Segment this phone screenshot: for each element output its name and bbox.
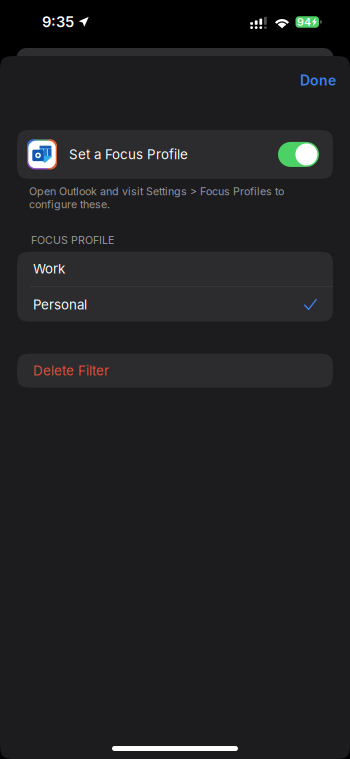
button[interactable]: Done: [291, 65, 345, 96]
staticText: 94: [297, 15, 311, 28]
staticText: Delete Filter: [33, 363, 109, 379]
button[interactable]: Personal: [17, 287, 333, 322]
staticText: Personal: [33, 296, 87, 313]
staticText: Open Outlook and visit Settings > Focus …: [29, 185, 284, 211]
staticText: 9:35: [42, 13, 74, 31]
staticText: Set a Focus Profile: [69, 146, 188, 162]
button[interactable]: Work: [17, 251, 333, 286]
staticText: FOCUS PROFILE: [31, 234, 114, 247]
staticText: Work: [33, 261, 65, 277]
staticText: Done: [300, 72, 336, 89]
button[interactable]: Delete Filter: [17, 354, 333, 388]
button[interactable]: Set a Focus Profile: [17, 130, 333, 179]
